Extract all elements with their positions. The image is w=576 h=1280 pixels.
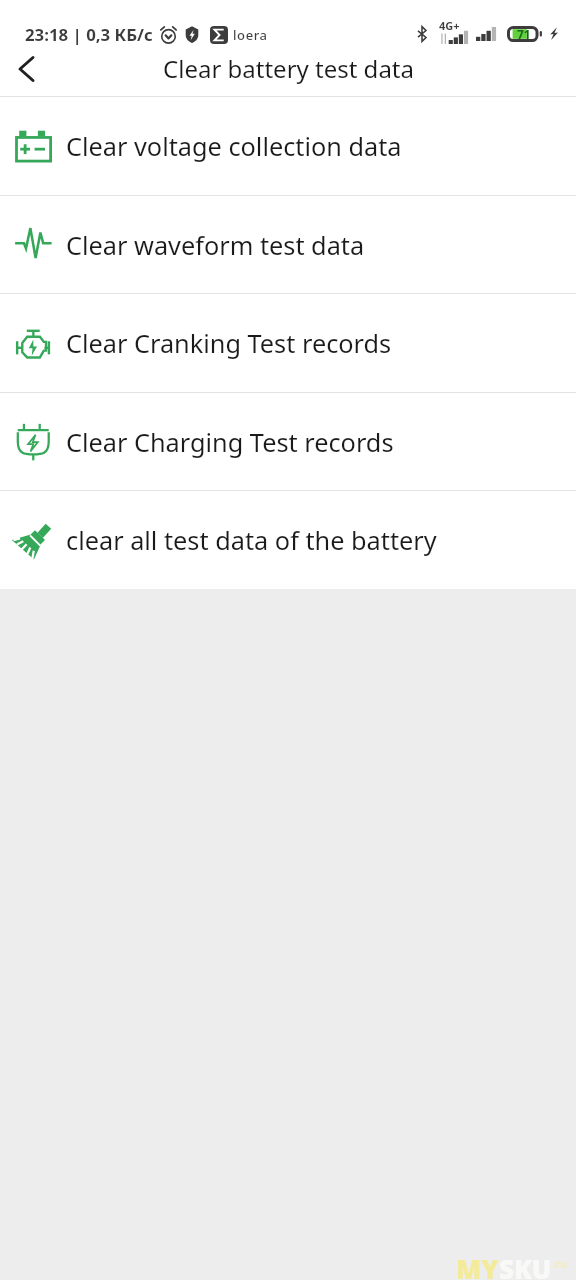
button[interactable]: Back: [0, 46, 46, 92]
staticText: Clear voltage collection data: [66, 129, 402, 163]
staticText: 71: [517, 26, 531, 42]
staticText: MY: [456, 1251, 499, 1280]
button[interactable]: Clear waveform test data: [0, 196, 576, 293]
button[interactable]: Clear Charging Test records: [0, 393, 576, 490]
button[interactable]: clear all test data of the battery: [0, 491, 576, 589]
staticText: clear all test data of the battery: [66, 523, 437, 557]
staticText: Clear battery test data: [163, 52, 414, 85]
staticText: .ru: [552, 1256, 568, 1271]
staticText: Clear waveform test data: [66, 228, 365, 262]
staticText: Clear Charging Test records: [66, 425, 394, 459]
staticText: 4G+: [439, 18, 460, 33]
staticText: SKU: [499, 1251, 552, 1280]
staticText: Clear Cranking Test records: [66, 326, 392, 360]
button[interactable]: Clear voltage collection data: [0, 97, 576, 195]
staticText: 23:18 | 0,3 КБ/с: [25, 23, 153, 46]
button[interactable]: Clear Cranking Test records: [0, 294, 576, 392]
staticText: loera: [233, 26, 268, 44]
